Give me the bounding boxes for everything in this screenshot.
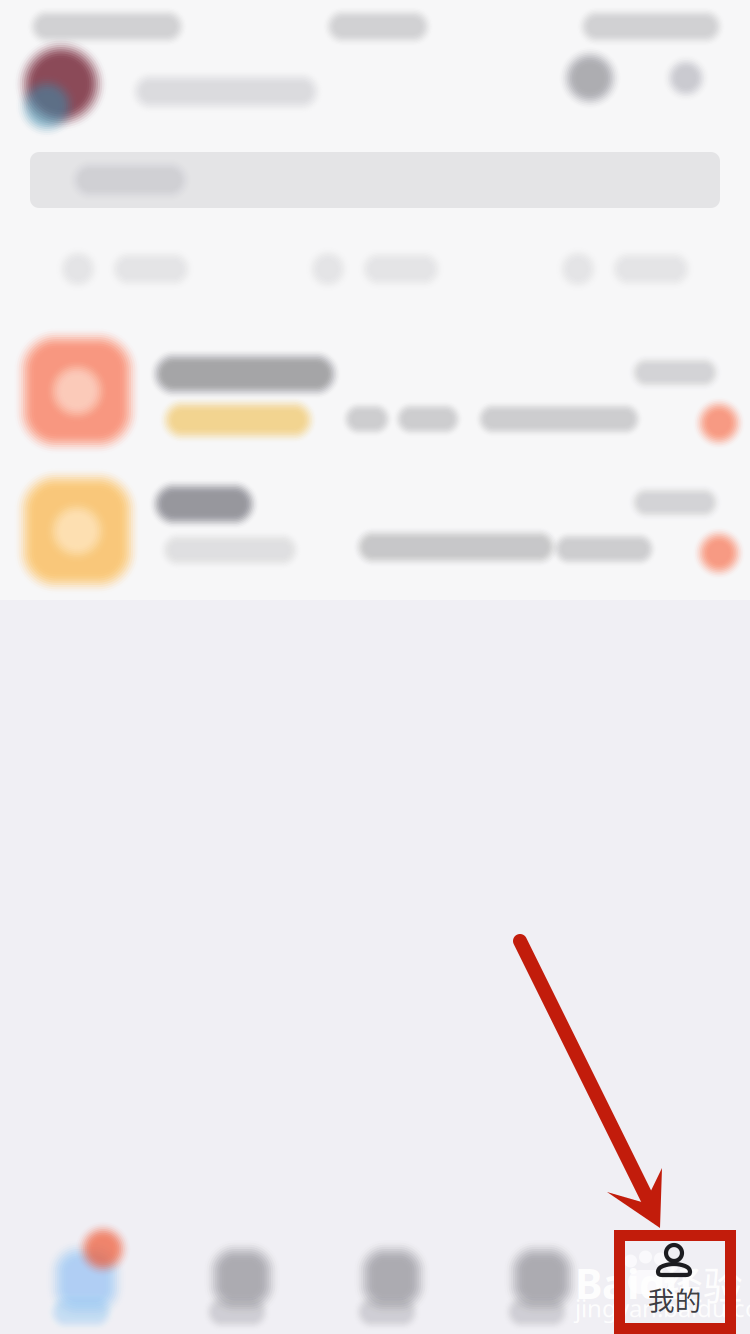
button[interactable]: Chats tab (0, 1224, 150, 1334)
staticText: 经验 (663, 1254, 743, 1312)
button[interactable]: Shortcut (250, 238, 500, 300)
staticText: Baidu (575, 1256, 692, 1310)
button[interactable]: Contacts tab (150, 1224, 300, 1334)
button[interactable]: Me tab (614, 1230, 736, 1334)
button[interactable]: Shortcut (0, 238, 250, 300)
button[interactable]: Chat conversation 1 (0, 318, 750, 458)
button[interactable]: Chat conversation 2 (0, 458, 750, 598)
button[interactable]: Shortcut (500, 238, 750, 300)
button[interactable]: Services tab (450, 1224, 600, 1334)
button[interactable]: Add (660, 52, 712, 104)
staticText: jingyan.baidu.com (575, 1292, 750, 1324)
button[interactable]: Scan (556, 44, 624, 112)
button[interactable]: Search (30, 152, 720, 208)
staticText: 我的 (648, 1280, 702, 1318)
button[interactable]: Discover tab (300, 1224, 450, 1334)
